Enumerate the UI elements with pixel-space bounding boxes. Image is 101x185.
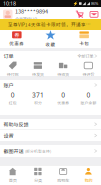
staticText: 0 <box>11 90 15 99</box>
staticText: 优惠券 <box>57 100 69 105</box>
staticText: 券 <box>14 31 19 39</box>
staticText: 待收货 <box>57 71 69 77</box>
button[interactable]: 0 <box>0 90 25 106</box>
button[interactable]: 截图开送 <box>0 145 101 157</box>
button[interactable] <box>93 82 97 88</box>
button[interactable]: 待评价 <box>76 61 101 77</box>
staticText: 待评价 <box>82 71 94 77</box>
staticText: (部分机型支持) <box>25 148 51 154</box>
button[interactable]: 分类 <box>25 167 50 183</box>
staticText: 设置 <box>3 132 13 139</box>
button[interactable]: 首页 <box>0 167 25 183</box>
staticText: 优惠券 <box>9 40 24 47</box>
staticText: 至尊VIP14天体验卡限时领，开通享98项权益 <box>8 21 93 28</box>
button[interactable]: 设置 <box>0 130 101 141</box>
staticText: 账户余额 <box>80 100 96 105</box>
staticText: 我的 <box>84 177 92 183</box>
staticText: 分类 <box>34 177 42 183</box>
staticText: 138****9894 <box>15 7 48 15</box>
button[interactable]: 我的 <box>76 167 101 183</box>
staticText: 购物车 <box>57 177 69 183</box>
button[interactable]: 帮助与反馈 <box>0 119 101 130</box>
staticText: 全部订单 <box>77 53 93 59</box>
button[interactable]: 371 <box>25 90 50 106</box>
staticText: 积分 <box>34 100 42 105</box>
staticText: 截图开送 <box>3 147 23 155</box>
staticText: 371 <box>32 90 44 99</box>
button[interactable]: 待收货 <box>50 61 76 77</box>
button[interactable]: 购物车 <box>76 11 84 18</box>
button[interactable]: 0 <box>50 90 76 106</box>
staticText: 10:18 <box>3 0 16 7</box>
staticText: 86% <box>91 1 98 6</box>
staticText: 待发货 <box>32 71 44 77</box>
staticText: 红包 <box>9 100 17 105</box>
staticText: 待付款 <box>7 71 19 77</box>
staticText: 卡包 <box>79 40 89 47</box>
button[interactable]: 购物车 <box>50 167 76 183</box>
staticText: 帮助与反馈 <box>3 120 28 128</box>
button[interactable]: 收藏 <box>34 30 67 48</box>
button[interactable]: 0 <box>76 90 101 106</box>
button[interactable]: 卡包 <box>67 31 101 47</box>
staticText: 会员等级LV3 <box>15 16 37 22</box>
staticText: ⚡ <box>73 1 78 6</box>
button[interactable]: 待付款 <box>0 61 25 77</box>
button[interactable]: 券 <box>0 31 34 47</box>
staticText: 收藏 <box>45 41 55 48</box>
staticText: 0 <box>61 90 65 99</box>
button[interactable]: 待发货 <box>25 61 50 77</box>
button[interactable]: 至尊VIP14天体验卡限时领，开通享98项权益 <box>0 19 101 30</box>
staticText: 账户 <box>3 81 13 89</box>
button[interactable]: 消息 <box>90 11 98 17</box>
staticText: 订单 <box>3 52 13 60</box>
staticText: 0 <box>86 90 90 99</box>
button[interactable]: 全部订单 <box>77 53 97 59</box>
staticText: 首页 <box>9 177 17 183</box>
